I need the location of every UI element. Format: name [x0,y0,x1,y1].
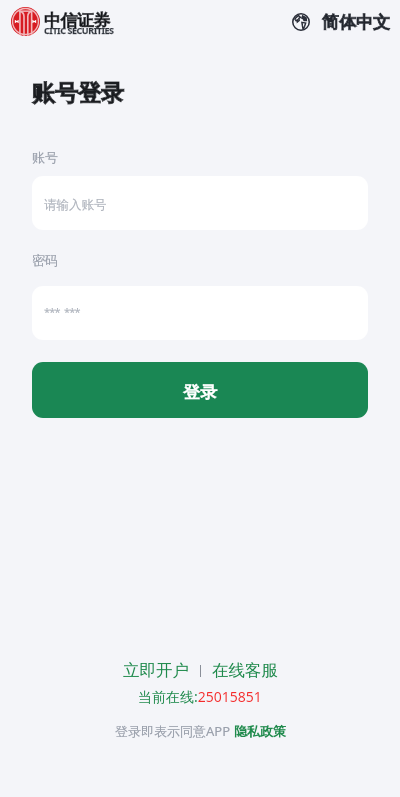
staticText: 中信证券 [44,10,110,31]
staticText: 密码 [32,252,58,268]
staticText: 隐私政策 [234,723,286,739]
staticText: *** *** [44,304,80,319]
staticText: 简体中文 [322,12,390,33]
button[interactable]: 隐私政策 [234,723,286,739]
staticText: 账号 [32,149,58,165]
staticText: CITIC SECURITIES [44,24,114,36]
staticText: 请输入账号 [44,197,107,213]
button[interactable]: 在线客服 [206,658,284,683]
staticText: 中信证券 [44,10,110,31]
button[interactable]: 登录 [32,362,368,418]
button[interactable]: 立即开户 [117,658,195,683]
staticText: 登录 [183,382,217,403]
staticText: CITIC SECURITIES [44,24,114,36]
button[interactable]: 请输入账号 [32,176,368,230]
button[interactable]: *** *** [32,286,368,340]
staticText: 立即开户 [123,660,189,681]
staticText: 账号登录 [32,79,124,108]
staticText: 简体中文 [322,12,390,33]
button[interactable]: Change language [292,12,390,33]
staticText: 登录即表示同意APP [115,722,234,740]
staticText: 当前在线:25015851 [138,687,262,706]
button[interactable]: 中信证券 [11,8,114,38]
staticText: 在线客服 [212,660,278,681]
staticText: 账号登录 [32,79,124,108]
